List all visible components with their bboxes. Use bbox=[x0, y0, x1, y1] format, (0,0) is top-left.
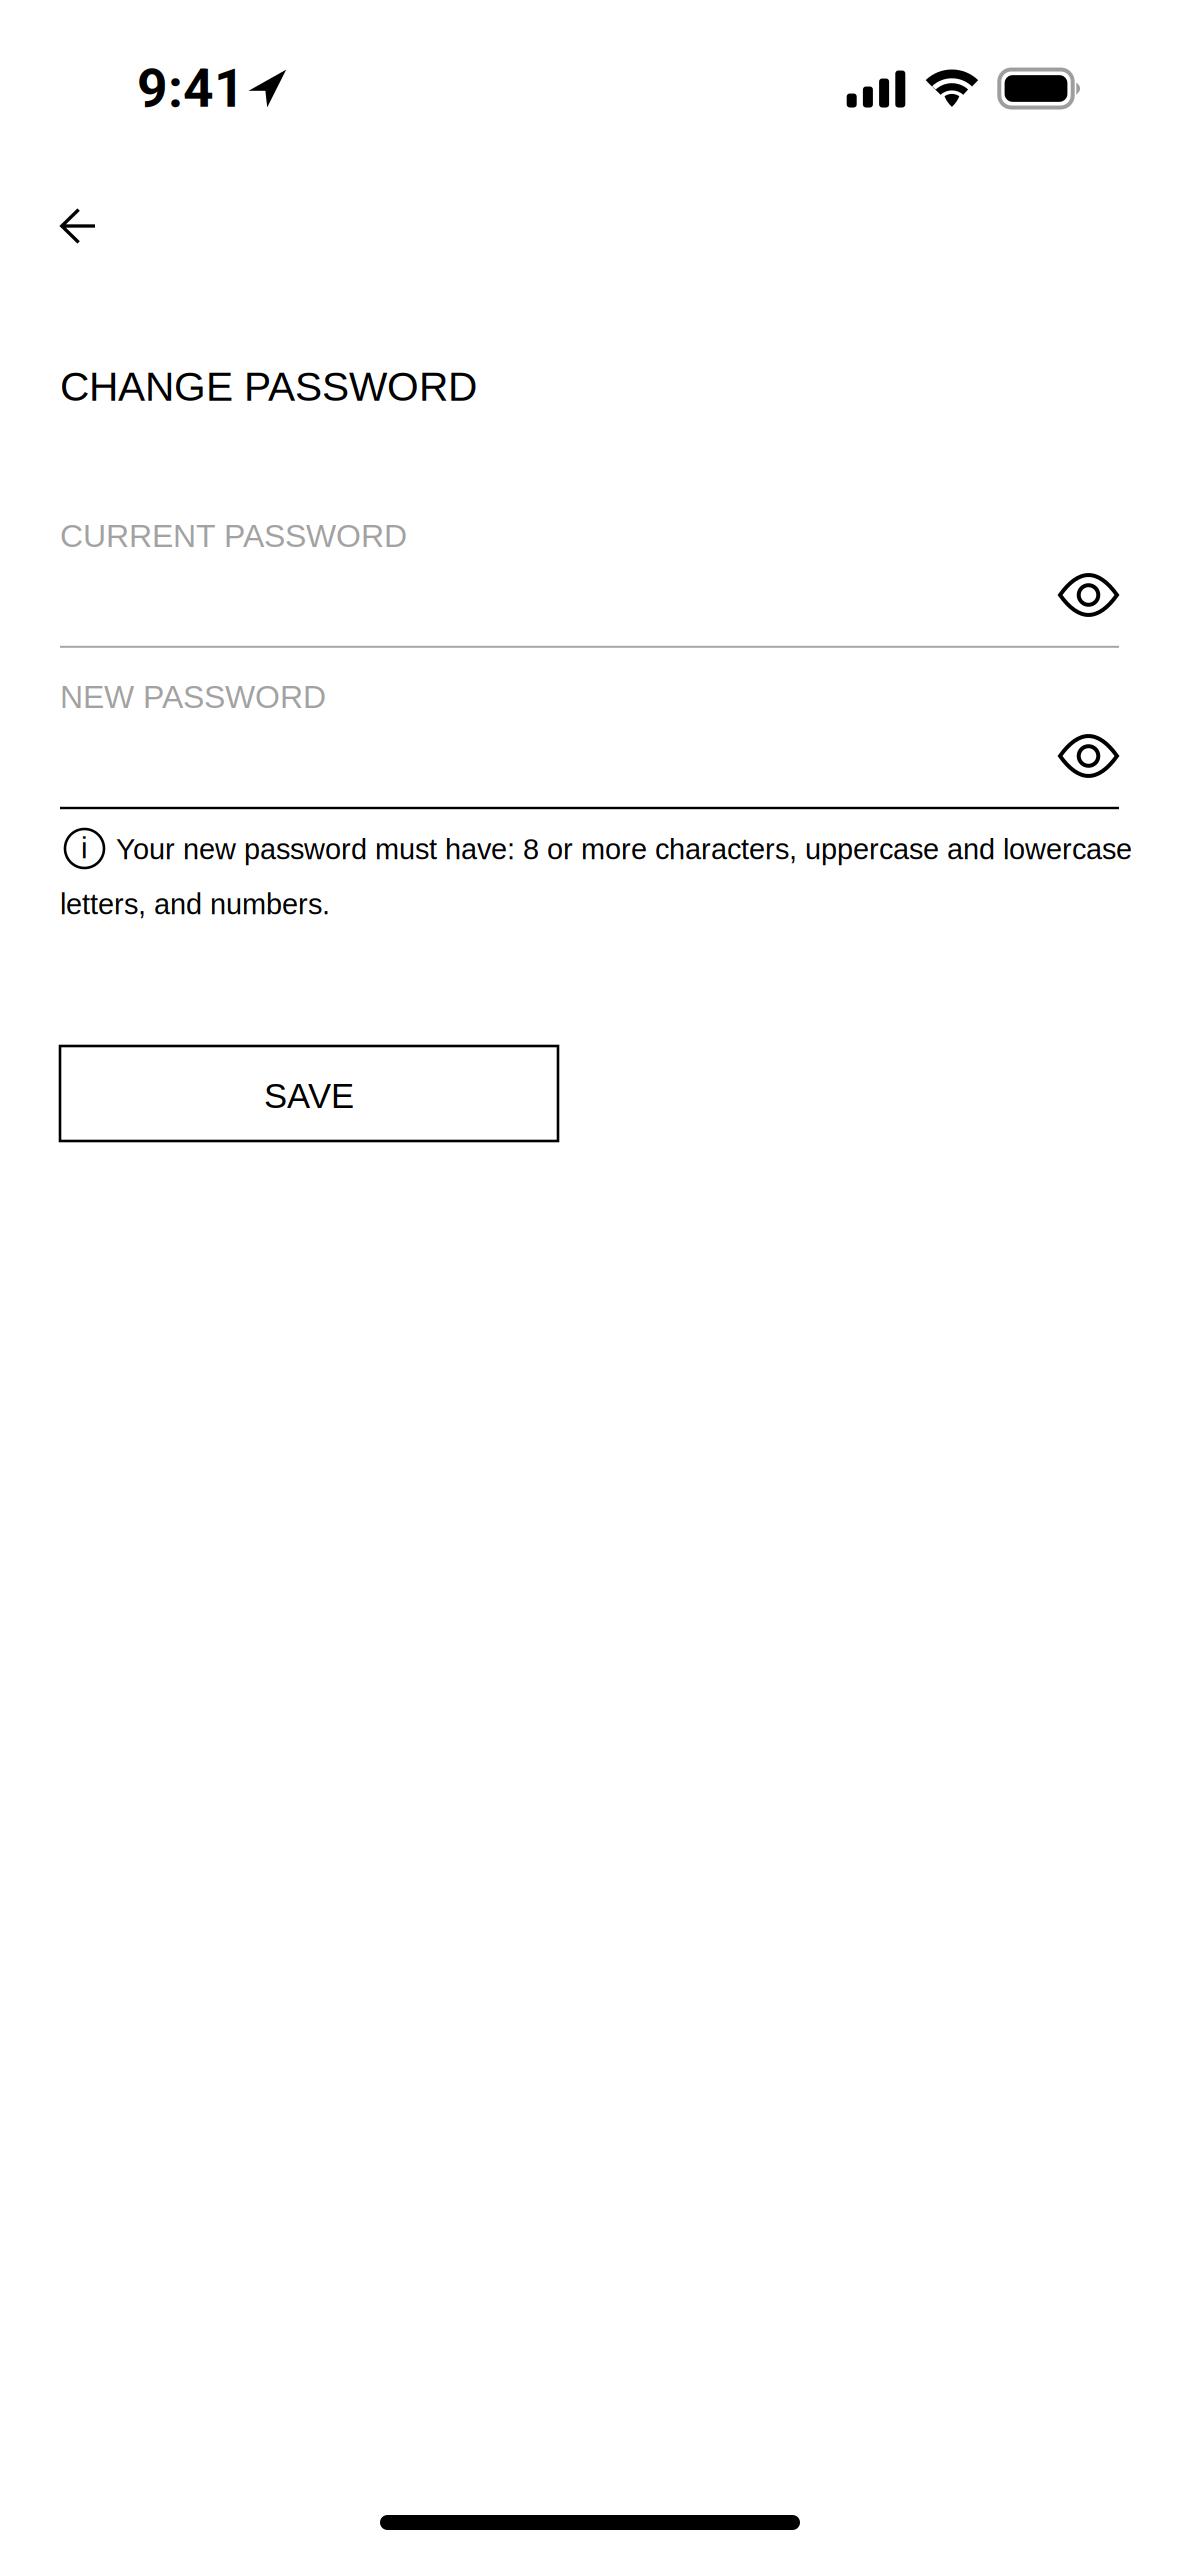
button[interactable]: Back bbox=[60, 182, 156, 270]
staticText: NEW PASSWORD bbox=[60, 679, 326, 715]
button[interactable]: SAVE bbox=[60, 1046, 558, 1141]
button[interactable]: Show current password bbox=[1007, 547, 1119, 643]
staticText: CHANGE PASSWORD bbox=[60, 364, 477, 409]
staticText: letters, and numbers. bbox=[60, 888, 330, 920]
staticText: CURRENT PASSWORD bbox=[60, 518, 407, 554]
staticText: i bbox=[81, 832, 88, 864]
staticText: SAVE bbox=[264, 1077, 354, 1115]
staticText: Your new password must have: 8 or more c… bbox=[116, 833, 1132, 865]
staticText: 9:41 bbox=[137, 57, 245, 120]
button[interactable]: Show new password bbox=[1007, 708, 1119, 804]
